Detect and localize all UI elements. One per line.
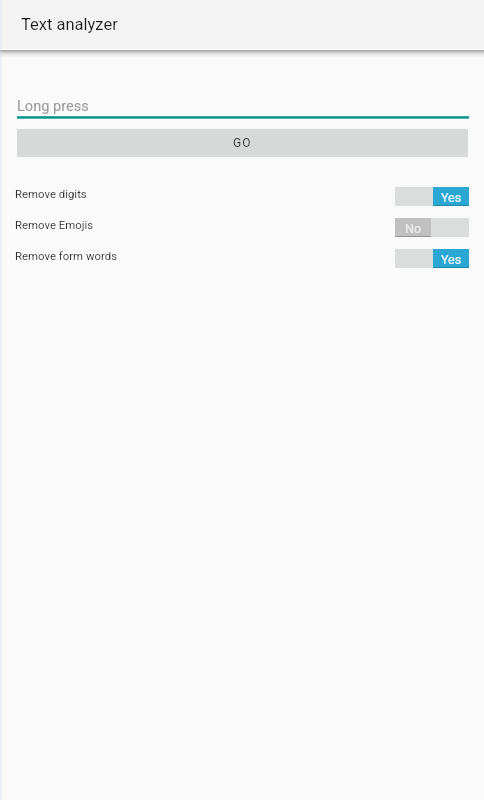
button[interactable]: Text input, Long press [17,92,469,119]
staticText: Remove Emojis [15,218,94,231]
staticText: Yes [441,252,462,267]
staticText: Remove form words [15,249,118,262]
staticText: GO [233,136,252,150]
staticText: Yes [441,190,462,205]
button[interactable]: Remove digits [395,187,469,206]
staticText: No [405,221,422,236]
button[interactable]: Remove form words [395,249,469,268]
staticText: Remove digits [15,187,87,200]
button[interactable]: GO [17,129,468,157]
staticText: Long press [17,97,89,114]
button[interactable]: Remove Emojis [395,218,469,237]
staticText: Text analyzer [21,15,118,34]
